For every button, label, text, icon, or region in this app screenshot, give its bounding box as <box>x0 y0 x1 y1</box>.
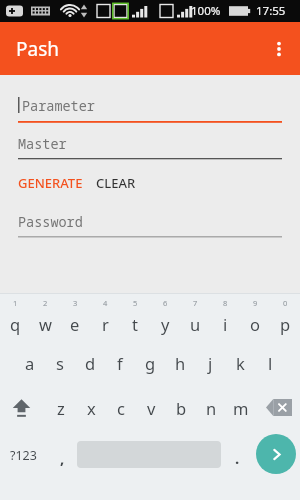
button[interactable]: Password <box>18 207 282 237</box>
staticText: n <box>206 397 217 419</box>
staticText: 1 <box>117 5 122 15</box>
staticText: 8 <box>223 298 228 308</box>
staticText: , <box>60 448 65 468</box>
button[interactable]: j <box>195 340 225 385</box>
staticText: 2 <box>163 5 168 15</box>
staticText: CLEAR <box>96 174 136 192</box>
staticText: t <box>132 313 138 335</box>
staticText: 3 <box>73 298 78 308</box>
button[interactable]: 0 <box>270 294 300 340</box>
button[interactable]: d <box>75 340 105 385</box>
staticText: o <box>250 313 260 335</box>
button[interactable]: 1 <box>0 294 30 340</box>
button[interactable]: More options <box>258 28 300 70</box>
button[interactable]: m <box>226 385 256 430</box>
button[interactable]: 2 <box>30 294 60 340</box>
staticText: ?123 <box>10 447 37 464</box>
staticText: 0 <box>283 298 288 308</box>
staticText: Password <box>18 213 83 231</box>
staticText: s <box>56 352 64 374</box>
staticText: u <box>190 313 201 335</box>
button[interactable]: b <box>166 385 196 430</box>
staticText: k <box>236 352 245 374</box>
button[interactable]: 4 <box>90 294 120 340</box>
staticText: 2 <box>43 298 48 308</box>
staticText: z <box>57 397 65 419</box>
button[interactable]: 6 <box>150 294 180 340</box>
staticText: Parameter <box>22 97 95 115</box>
button[interactable]: f <box>105 340 135 385</box>
staticText: 4 <box>103 298 108 308</box>
button[interactable]: Period <box>224 430 250 480</box>
button[interactable]: 7 <box>180 294 210 340</box>
staticText: q <box>10 313 21 335</box>
staticText: c <box>117 397 125 419</box>
staticText: Master <box>18 135 67 153</box>
staticText: d <box>85 352 96 374</box>
staticText: 6 <box>163 298 168 308</box>
staticText: f <box>117 352 123 374</box>
button[interactable]: g <box>135 340 165 385</box>
staticText: GENERATE <box>18 174 83 192</box>
button[interactable]: CLEAR <box>96 174 136 192</box>
staticText: p <box>280 313 291 335</box>
staticText: 9 <box>253 298 258 308</box>
button[interactable]: Backspace <box>258 385 300 430</box>
staticText: x <box>87 397 96 419</box>
staticText: y <box>161 313 170 335</box>
staticText: . <box>235 448 240 468</box>
button[interactable]: z <box>46 385 76 430</box>
staticText: e <box>70 313 80 335</box>
staticText: l <box>268 352 273 374</box>
button[interactable]: GENERATE <box>18 174 83 192</box>
staticText: a <box>25 352 35 374</box>
button[interactable]: ?123 <box>0 430 46 480</box>
staticText: 5 <box>133 298 138 308</box>
button[interactable]: Master <box>18 129 282 159</box>
button[interactable]: Parameter <box>18 91 282 121</box>
staticText: 100% <box>191 3 221 19</box>
button[interactable]: s <box>45 340 75 385</box>
button[interactable]: Enter <box>256 434 296 474</box>
button[interactable]: c <box>106 385 136 430</box>
staticText: m <box>233 397 249 419</box>
staticText: r <box>102 313 109 335</box>
button[interactable]: l <box>255 340 285 385</box>
button[interactable]: n <box>196 385 226 430</box>
button[interactable]: 9 <box>240 294 270 340</box>
staticText: j <box>208 352 213 374</box>
staticText: 17:55 <box>256 3 286 19</box>
button[interactable]: 8 <box>210 294 240 340</box>
staticText: R <box>99 5 104 15</box>
button[interactable]: Comma <box>48 430 76 480</box>
staticText: i <box>223 313 228 335</box>
staticText: 7 <box>193 298 198 308</box>
button[interactable]: 3 <box>60 294 90 340</box>
button[interactable]: h <box>165 340 195 385</box>
staticText: w <box>39 313 52 335</box>
staticText: h <box>175 352 186 374</box>
button[interactable]: k <box>225 340 255 385</box>
staticText: b <box>176 397 187 419</box>
staticText: v <box>147 397 156 419</box>
staticText: g <box>145 352 156 374</box>
staticText: 1 <box>13 298 18 308</box>
staticText: Pash <box>16 36 59 62</box>
button[interactable]: a <box>15 340 45 385</box>
button[interactable]: 5 <box>120 294 150 340</box>
button[interactable]: v <box>136 385 166 430</box>
button[interactable]: Shift <box>0 385 42 430</box>
button[interactable]: x <box>76 385 106 430</box>
